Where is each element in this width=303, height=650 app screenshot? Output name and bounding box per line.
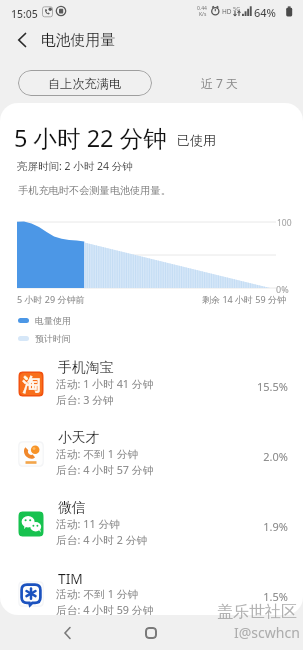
staticText: 5 小时 29 分钟前 xyxy=(17,293,85,305)
staticText: 预计时间 xyxy=(35,333,71,344)
staticText: 0.44 xyxy=(197,5,207,12)
staticText: 盖乐世社区 xyxy=(217,602,297,622)
staticText: 电池使用量 xyxy=(41,31,115,50)
staticText: 后台: 4 小时 59 分钟 xyxy=(56,602,154,615)
staticText: I@scwhcn xyxy=(234,623,300,642)
staticText: 手机淘宝 xyxy=(58,359,114,376)
staticText: 微信 xyxy=(58,499,86,516)
button[interactable]: 自上次充满电 xyxy=(18,70,152,96)
staticText: 自上次充满电 xyxy=(48,76,122,91)
staticText: 亮屏时间: 2 小时 24 分钟 xyxy=(17,159,133,173)
staticText: 0% xyxy=(276,283,289,295)
button[interactable]: 近 7 天 xyxy=(201,70,239,96)
staticText: 手机充电时不会测量电池使用量。 xyxy=(18,184,171,197)
button[interactable]: 微信 xyxy=(0,498,303,568)
staticText: TIM xyxy=(58,569,83,588)
staticText: 剩余 14 小时 59 分钟 xyxy=(150,293,286,305)
button[interactable]: 小天才 xyxy=(0,428,303,498)
staticText: 电量使用 xyxy=(35,315,71,326)
button[interactable]: TIM xyxy=(0,568,303,615)
staticText: 100 xyxy=(277,217,292,229)
staticText: 2.0% xyxy=(200,449,288,464)
staticText: 15.5% xyxy=(200,379,288,394)
staticText: 活动: 不到 1 分钟 xyxy=(56,446,139,461)
button[interactable]: Recents xyxy=(214,616,254,650)
staticText: 后台: 3 分钟 xyxy=(56,392,114,407)
staticText: 1.9% xyxy=(200,519,288,534)
staticText: 5G xyxy=(233,5,241,12)
staticText: 活动: 1 小时 41 分钟 xyxy=(56,376,154,391)
staticText: 活动: 不到 1 分钟 xyxy=(56,586,139,601)
staticText: 15:05 xyxy=(11,7,38,21)
staticText: 活动: 11 分钟 xyxy=(56,516,121,531)
staticText: 近 7 天 xyxy=(201,75,239,91)
staticText: 后台: 4 小时 2 分钟 xyxy=(56,532,148,547)
staticText: HD xyxy=(222,7,232,16)
staticText: 小天才 xyxy=(58,429,100,446)
staticText: 已使用 xyxy=(177,132,216,148)
staticText: 1.5% xyxy=(200,589,288,604)
staticText: 后台: 4 小时 57 分钟 xyxy=(56,462,154,477)
button[interactable]: 淘 xyxy=(0,358,303,428)
staticText: 淘 xyxy=(22,374,40,397)
staticText: K/s xyxy=(199,11,207,18)
button[interactable]: Back xyxy=(9,26,37,54)
staticText: 64% xyxy=(254,5,276,20)
button[interactable]: Back xyxy=(48,616,88,650)
staticText: 5 小时 22 分钟 xyxy=(14,122,167,154)
button[interactable]: Home xyxy=(131,616,171,650)
